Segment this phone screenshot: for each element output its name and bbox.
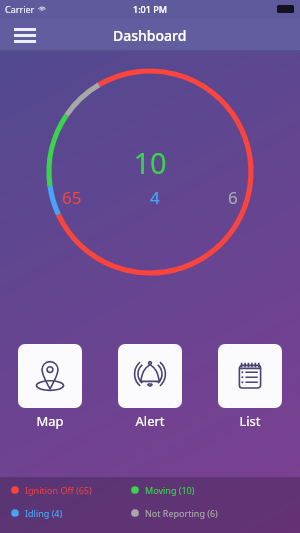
staticText: Idling (4) xyxy=(25,507,63,519)
staticText: Dashboard xyxy=(113,26,187,45)
staticText: 4 xyxy=(150,186,160,209)
staticText: 6 xyxy=(228,186,238,209)
staticText: Alert xyxy=(135,412,165,430)
staticText: 10 xyxy=(133,143,167,182)
staticText: Carrier xyxy=(5,3,35,15)
button[interactable]: Idling (4) xyxy=(10,507,130,519)
staticText: Map xyxy=(36,412,64,430)
staticText: Moving (10) xyxy=(145,484,195,496)
button[interactable]: Ignition Off (65) xyxy=(10,484,130,496)
staticText: 65 xyxy=(62,186,82,209)
button[interactable]: Moving (10) xyxy=(130,484,195,496)
button[interactable]: Not Reporting (6) xyxy=(130,507,218,519)
button[interactable]: List xyxy=(216,344,284,430)
staticText: Not Reporting (6) xyxy=(145,507,218,519)
button[interactable]: Alert xyxy=(116,344,184,430)
button[interactable]: Open navigation menu xyxy=(10,20,40,50)
staticText: 1:01 PM xyxy=(133,3,167,15)
staticText: List xyxy=(239,412,261,430)
staticText: Ignition Off (65) xyxy=(25,484,92,496)
button[interactable]: Map xyxy=(16,344,84,430)
